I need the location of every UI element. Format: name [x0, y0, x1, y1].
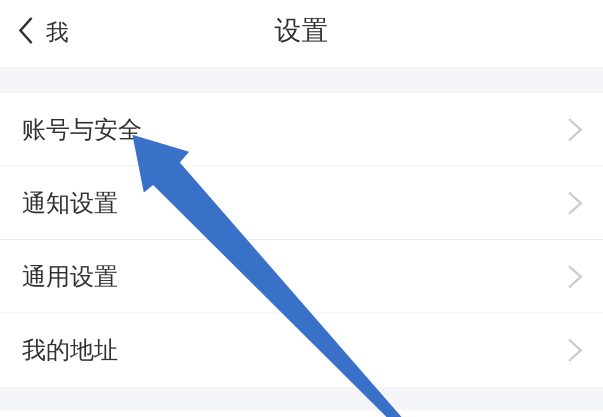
staticText: 设置: [274, 14, 328, 47]
staticText: 我: [46, 19, 69, 46]
button[interactable]: 我的地址: [0, 313, 603, 387]
button[interactable]: 返回 我: [0, 0, 81, 67]
button[interactable]: 通知设置: [0, 166, 603, 240]
staticText: 账号与安全: [22, 115, 142, 144]
staticText: 通知设置: [22, 188, 118, 218]
staticText: 我的地址: [22, 335, 118, 365]
staticText: 通用设置: [22, 262, 118, 291]
button[interactable]: 通用设置: [0, 240, 603, 313]
button[interactable]: 账号与安全: [0, 93, 603, 166]
